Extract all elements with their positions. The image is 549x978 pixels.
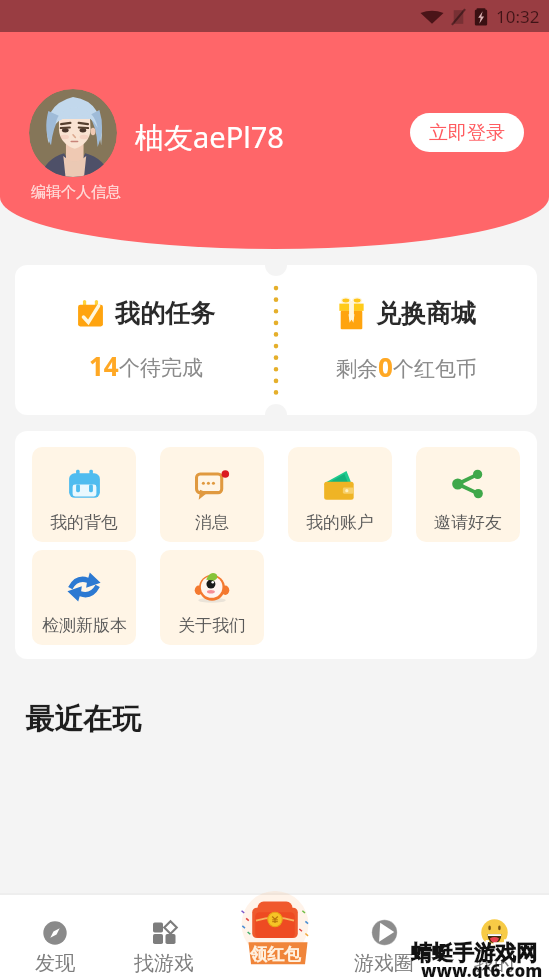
staticText: 个红包币 <box>393 356 477 382</box>
staticText: 14 <box>89 348 119 383</box>
staticText: 立即登录 <box>429 121 505 145</box>
staticText: 10:32 <box>496 5 540 28</box>
staticText: 柚友aePl78 <box>135 117 284 157</box>
staticText: 我的背包 <box>50 512 118 533</box>
button[interactable]: 我的 <box>439 893 549 978</box>
staticText: 邀请好友 <box>434 512 502 533</box>
staticText: 蜻蜓手游戏网 <box>411 940 537 966</box>
staticText: 领红包 <box>250 944 301 965</box>
button[interactable]: 立即登录 <box>410 113 524 152</box>
staticText: 我的任务 <box>115 298 215 329</box>
staticText: 检测新版本 <box>42 615 127 636</box>
button[interactable]: 邀请好友 <box>416 447 520 542</box>
staticText: 发现 <box>35 951 75 976</box>
staticText: 0 <box>378 349 393 384</box>
staticText: 个待完成 <box>119 355 203 381</box>
staticText: 最近在玩 <box>25 701 141 738</box>
staticText: 兑换商城 <box>376 298 476 329</box>
staticText: 游戏圈 <box>354 951 414 976</box>
button[interactable]: 编辑个人信息 <box>29 89 119 202</box>
button[interactable]: 我的账户 <box>288 447 392 542</box>
staticText: 找游戏 <box>134 951 194 976</box>
button[interactable]: 消息 <box>160 447 264 542</box>
other: 邀请好友 <box>452 468 484 500</box>
button[interactable]: 找游戏 <box>109 893 219 978</box>
staticText: 剩余 <box>336 356 378 382</box>
button[interactable]: 我的背包 <box>32 447 136 542</box>
button[interactable]: 关于我们 <box>160 550 264 645</box>
staticText: 编辑个人信息 <box>31 183 121 202</box>
button[interactable]: 领红包 <box>237 894 313 970</box>
staticText: 我的账户 <box>306 512 374 533</box>
staticText: 我的 <box>474 951 514 976</box>
staticText: 消息 <box>195 512 229 533</box>
button[interactable]: 检测新版本 <box>32 550 136 645</box>
staticText: www.qt6.com <box>421 959 543 978</box>
button[interactable]: 我的任务 <box>15 265 276 415</box>
staticText: 蜻蜓手游戏网 <box>409 938 535 964</box>
staticText: 关于我们 <box>178 615 246 636</box>
button[interactable]: 游戏圈 <box>329 893 439 978</box>
button[interactable]: 发现 <box>0 893 109 978</box>
button[interactable]: 兑换商城 <box>276 265 537 415</box>
